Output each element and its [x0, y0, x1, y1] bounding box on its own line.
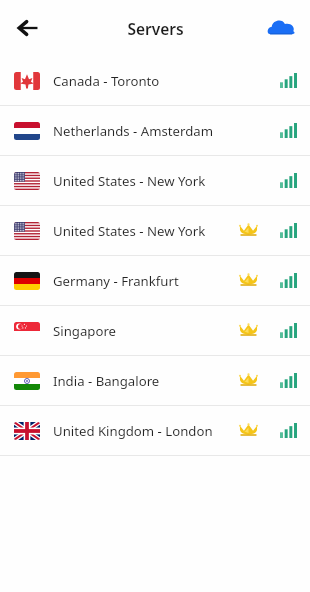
button[interactable]: United Kingdom - London [0, 406, 310, 455]
staticText: Germany - Frankfurt [53, 272, 179, 290]
button[interactable]: Germany - Frankfurt [0, 256, 310, 305]
staticText: Servers [127, 18, 184, 39]
button[interactable]: United States - New York [0, 206, 310, 255]
button[interactable]: United States - New York [0, 156, 310, 205]
staticText: India - Bangalore [53, 372, 160, 390]
staticText: Canada - Toronto [53, 72, 160, 90]
button[interactable]: Singapore [0, 306, 310, 355]
staticText: United States - New York [53, 222, 206, 240]
button[interactable]: Netherlands - Amsterdam [0, 106, 310, 155]
staticText: United Kingdom - London [53, 422, 213, 440]
button[interactable]: India - Bangalore [0, 356, 310, 405]
button[interactable]: Cloud [262, 9, 300, 47]
staticText: United States - New York [53, 172, 206, 190]
button[interactable]: Back [8, 8, 48, 48]
staticText: Netherlands - Amsterdam [53, 122, 214, 140]
staticText: Singapore [53, 322, 117, 340]
button[interactable]: Canada - Toronto [0, 56, 310, 105]
